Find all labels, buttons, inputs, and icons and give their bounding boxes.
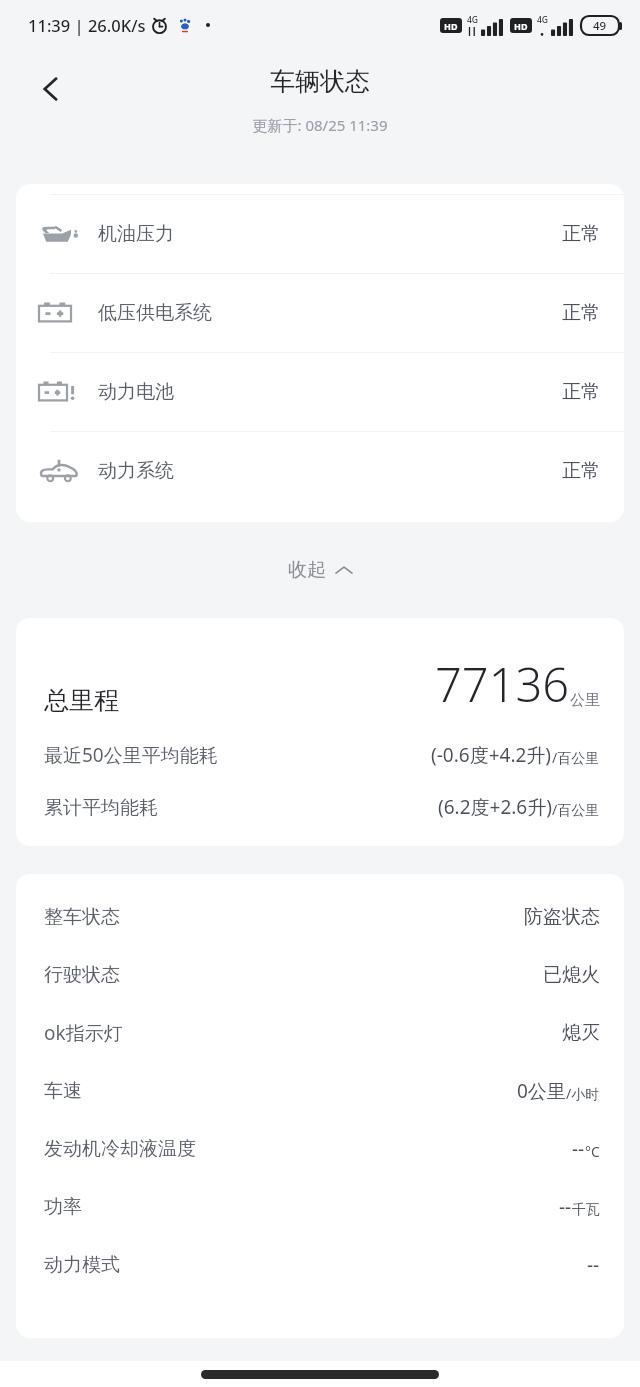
button[interactable]: 机油压力: [16, 195, 624, 273]
staticText: 整车状态: [44, 905, 120, 929]
staticText: /小时: [566, 1084, 600, 1103]
staticText: /百公里: [552, 748, 600, 767]
button[interactable]: 动力系统: [16, 432, 624, 510]
staticText: 车速: [44, 1079, 82, 1103]
staticText: 收起: [288, 558, 326, 582]
staticText: 公里: [570, 691, 600, 710]
staticText: 4G: [537, 14, 549, 26]
staticText: °C: [585, 1142, 600, 1161]
staticText: --: [572, 1136, 585, 1162]
button[interactable]: 动力电池: [16, 353, 624, 431]
staticText: 最近50公里平均能耗: [44, 742, 218, 768]
staticText: 0公里: [517, 1078, 566, 1104]
button[interactable]: Back: [20, 58, 82, 120]
staticText: (-0.6度+4.2升): [431, 742, 552, 768]
staticText: 低压供电系统: [98, 301, 212, 325]
button[interactable]: 低压供电系统: [16, 274, 624, 352]
staticText: 车辆状态: [270, 66, 370, 97]
staticText: 机油压力: [98, 222, 174, 246]
staticText: (6.2度+2.6升): [438, 794, 552, 820]
staticText: 熄灭: [562, 1021, 600, 1045]
staticText: 正常: [562, 459, 600, 483]
staticText: 更新于: 08/25 11:39: [252, 115, 388, 135]
staticText: 动力模式: [44, 1253, 120, 1277]
staticText: 11:39 | 26.0K/s: [28, 14, 146, 36]
staticText: 正常: [562, 222, 600, 246]
staticText: HD: [444, 20, 458, 32]
staticText: 4G: [467, 14, 479, 26]
staticText: 发动机冷却液温度: [44, 1137, 196, 1161]
staticText: 动力电池: [98, 380, 174, 404]
staticText: 总里程: [44, 685, 119, 716]
staticText: 已熄火: [543, 963, 600, 987]
staticText: ok指示灯: [44, 1020, 123, 1046]
staticText: 正常: [562, 301, 600, 325]
staticText: 千瓦: [572, 1201, 600, 1219]
staticText: 49: [593, 18, 607, 34]
staticText: 防盗状态: [524, 905, 600, 929]
staticText: --: [587, 1252, 600, 1278]
staticText: 77136: [435, 652, 570, 716]
staticText: HD: [514, 20, 528, 32]
staticText: 正常: [562, 380, 600, 404]
staticText: 动力系统: [98, 459, 174, 483]
staticText: 功率: [44, 1195, 82, 1219]
button[interactable]: 收起: [270, 548, 370, 592]
staticText: 行驶状态: [44, 963, 120, 987]
staticText: 累计平均能耗: [44, 796, 158, 820]
staticText: --: [559, 1194, 572, 1220]
staticText: /百公里: [552, 800, 600, 819]
